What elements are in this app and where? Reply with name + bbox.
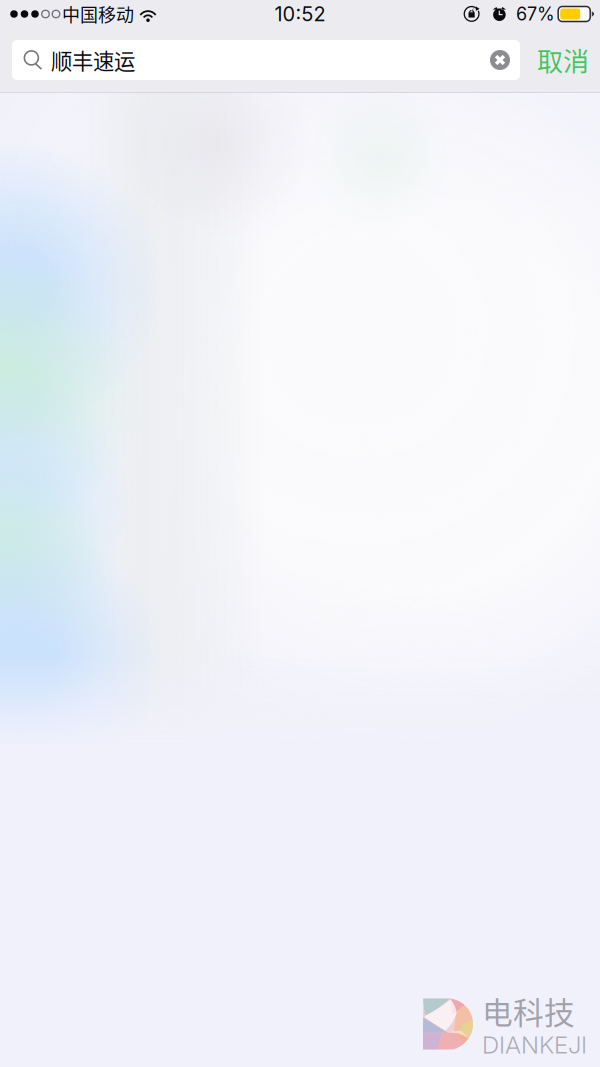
staticText: DIANKEJI: [482, 1030, 587, 1059]
staticText: 67%: [516, 3, 555, 25]
staticText: 中国移动: [62, 1, 134, 27]
staticText: 顺丰速运: [51, 45, 135, 75]
staticText: 电科技: [482, 989, 575, 1033]
staticText: 10:52: [274, 2, 325, 26]
button[interactable]: 顺丰速运: [12, 40, 520, 80]
button[interactable]: 取消: [529, 40, 597, 80]
button[interactable]: Clear search text: [482, 40, 520, 80]
staticText: 取消: [537, 41, 589, 79]
